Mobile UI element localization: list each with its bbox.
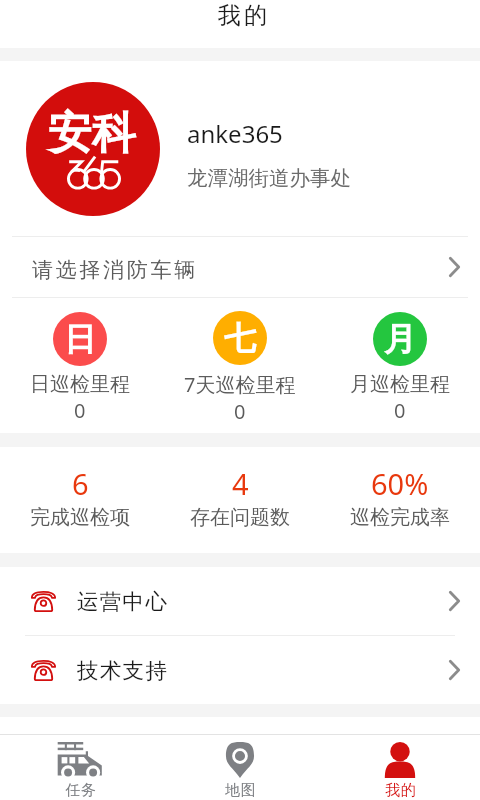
other: 打开 [443, 254, 465, 280]
button[interactable]: 60% [320, 447, 480, 553]
other: 打开 [443, 657, 465, 683]
button[interactable]: 我的 [320, 735, 480, 800]
staticText: 运营中心 [77, 588, 169, 615]
button[interactable]: 4 [160, 447, 320, 553]
button[interactable]: 运营中心 [0, 567, 480, 635]
button[interactable]: 技术支持 [0, 636, 480, 704]
staticText: 月巡检里程 [350, 372, 450, 397]
staticText: 请选择消防车辆 [32, 257, 198, 283]
button[interactable]: 6 [0, 447, 160, 553]
staticText: 龙潭湖街道办事处 [187, 165, 351, 191]
staticText: 0 [394, 397, 406, 424]
staticText: 7天巡检里程 [184, 371, 296, 398]
staticText: 4 [232, 464, 249, 503]
staticText: 月 [384, 319, 416, 359]
staticText: 我的 [216, 1, 269, 30]
staticText: 安科 [48, 106, 136, 161]
other: 打开 [443, 588, 465, 614]
staticText: 6 [72, 464, 89, 503]
button[interactable]: 请选择消防车辆 [0, 237, 480, 297]
staticText: 地图 [225, 781, 256, 800]
staticText: 七 [224, 318, 256, 358]
staticText: 任务 [65, 781, 96, 800]
staticText: anke365 [187, 117, 283, 150]
staticText: 巡检完成率 [350, 505, 450, 530]
button[interactable]: 任务 [0, 735, 160, 800]
staticText: 0 [74, 397, 86, 424]
button[interactable]: 七 [160, 298, 320, 433]
staticText: 技术支持 [77, 657, 169, 684]
button[interactable]: 安科 [0, 61, 480, 236]
staticText: 日 [64, 319, 96, 359]
staticText: 60% [371, 464, 429, 503]
staticText: 完成巡检项 [30, 505, 130, 530]
button[interactable]: 地图 [160, 735, 320, 800]
button[interactable]: 日 [0, 298, 160, 433]
button[interactable]: 月 [320, 298, 480, 433]
staticText: 存在问题数 [190, 505, 290, 530]
staticText: 日巡检里程 [30, 372, 130, 397]
staticText: 我的 [385, 781, 416, 800]
staticText: 0 [234, 398, 246, 425]
